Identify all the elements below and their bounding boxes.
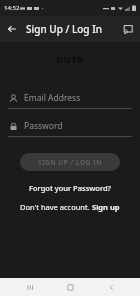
staticText: Forgot your Password? bbox=[29, 183, 111, 193]
staticText: Sign Up / Log In bbox=[26, 22, 102, 36]
button[interactable]: SIGN UP / LOG IN bbox=[20, 153, 120, 171]
staticText: OUTD bbox=[56, 53, 85, 65]
staticText: SIGN UP / LOG IN bbox=[38, 158, 102, 167]
button[interactable]: Recent apps bbox=[19, 278, 41, 296]
staticText: Email Address bbox=[24, 92, 81, 104]
button[interactable]: Password bbox=[8, 120, 132, 137]
button[interactable]: Cast bbox=[119, 20, 137, 38]
button[interactable]: Forgot your Password? bbox=[23, 181, 117, 195]
staticText: Don't have account. bbox=[20, 202, 92, 212]
staticText: Sign up bbox=[92, 202, 120, 212]
button[interactable]: Home bbox=[59, 278, 81, 296]
button[interactable]: Email Address bbox=[8, 92, 132, 109]
button[interactable]: Back bbox=[2, 19, 22, 39]
staticText: 14:52 bbox=[4, 4, 20, 12]
button[interactable]: Don't have account. bbox=[14, 200, 126, 214]
staticText: Password bbox=[24, 120, 63, 132]
button[interactable]: Back bbox=[100, 278, 122, 296]
